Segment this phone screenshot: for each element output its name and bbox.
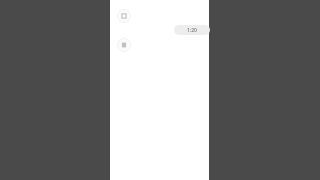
button[interactable]: 1:20 (174, 25, 210, 35)
staticText: 1:20 (187, 27, 197, 34)
button[interactable]: More options (117, 38, 131, 52)
button[interactable]: Navigate up (117, 9, 131, 23)
